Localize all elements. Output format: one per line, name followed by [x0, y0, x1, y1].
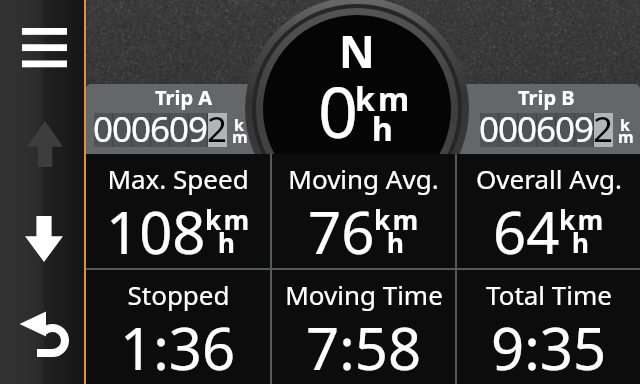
staticText: Max. Speed	[107, 161, 249, 196]
staticText: 0	[479, 105, 500, 153]
button[interactable]: Moving Avg.	[272, 154, 455, 268]
button[interactable]: Trip A	[86, 84, 270, 154]
staticText: 6	[150, 105, 171, 153]
staticText: 0	[498, 105, 519, 153]
staticText: km	[205, 202, 252, 237]
staticText: 0	[169, 105, 190, 153]
staticText: k	[234, 114, 244, 136]
staticText: Overall Avg.	[476, 161, 622, 196]
staticText: 1:36	[120, 308, 236, 384]
staticText: 0	[318, 63, 359, 158]
staticText: m	[232, 126, 248, 148]
button[interactable]: Overall Avg.	[457, 154, 640, 268]
staticText: h	[387, 225, 404, 260]
staticText: 0	[517, 105, 538, 153]
staticText: h	[218, 225, 235, 260]
staticText: Total Time	[486, 277, 612, 312]
staticText: 108	[106, 192, 206, 271]
staticText: Trip B	[518, 84, 575, 111]
staticText: h	[372, 107, 393, 151]
staticText: 2	[207, 105, 228, 153]
button[interactable]: Moving Time	[272, 270, 455, 384]
button[interactable]: Menu	[0, 0, 86, 96]
staticText: km	[374, 202, 421, 237]
staticText: Trip A	[155, 84, 213, 111]
staticText: 2	[593, 105, 614, 153]
staticText: Moving Avg.	[288, 161, 439, 196]
staticText: 0	[93, 105, 114, 153]
staticText: 9	[188, 105, 209, 153]
staticText: 7:58	[306, 308, 422, 384]
staticText: 0	[112, 105, 133, 153]
staticText: 9	[574, 105, 595, 153]
button[interactable]: Scroll up	[0, 96, 86, 184]
button[interactable]: Max. Speed	[86, 154, 270, 268]
staticText: N	[297, 21, 417, 81]
staticText: 9:35	[491, 308, 607, 384]
staticText: 64	[493, 192, 560, 271]
staticText: 6	[536, 105, 557, 153]
staticText: h	[572, 225, 589, 260]
staticText: Moving Time	[285, 277, 443, 312]
staticText: km	[355, 77, 413, 121]
button[interactable]: Total Time	[457, 270, 640, 384]
button[interactable]: Scroll down	[0, 184, 86, 272]
staticText: Stopped	[127, 277, 230, 312]
staticText: k	[620, 114, 630, 136]
staticText: 0	[555, 105, 576, 153]
button[interactable]: Back	[0, 272, 86, 384]
button[interactable]: Stopped	[86, 270, 270, 384]
button[interactable]: Trip B	[455, 84, 640, 154]
staticText: km	[559, 202, 606, 237]
staticText: 76	[308, 192, 375, 271]
staticText: m	[618, 126, 634, 148]
staticText: 0	[131, 105, 152, 153]
